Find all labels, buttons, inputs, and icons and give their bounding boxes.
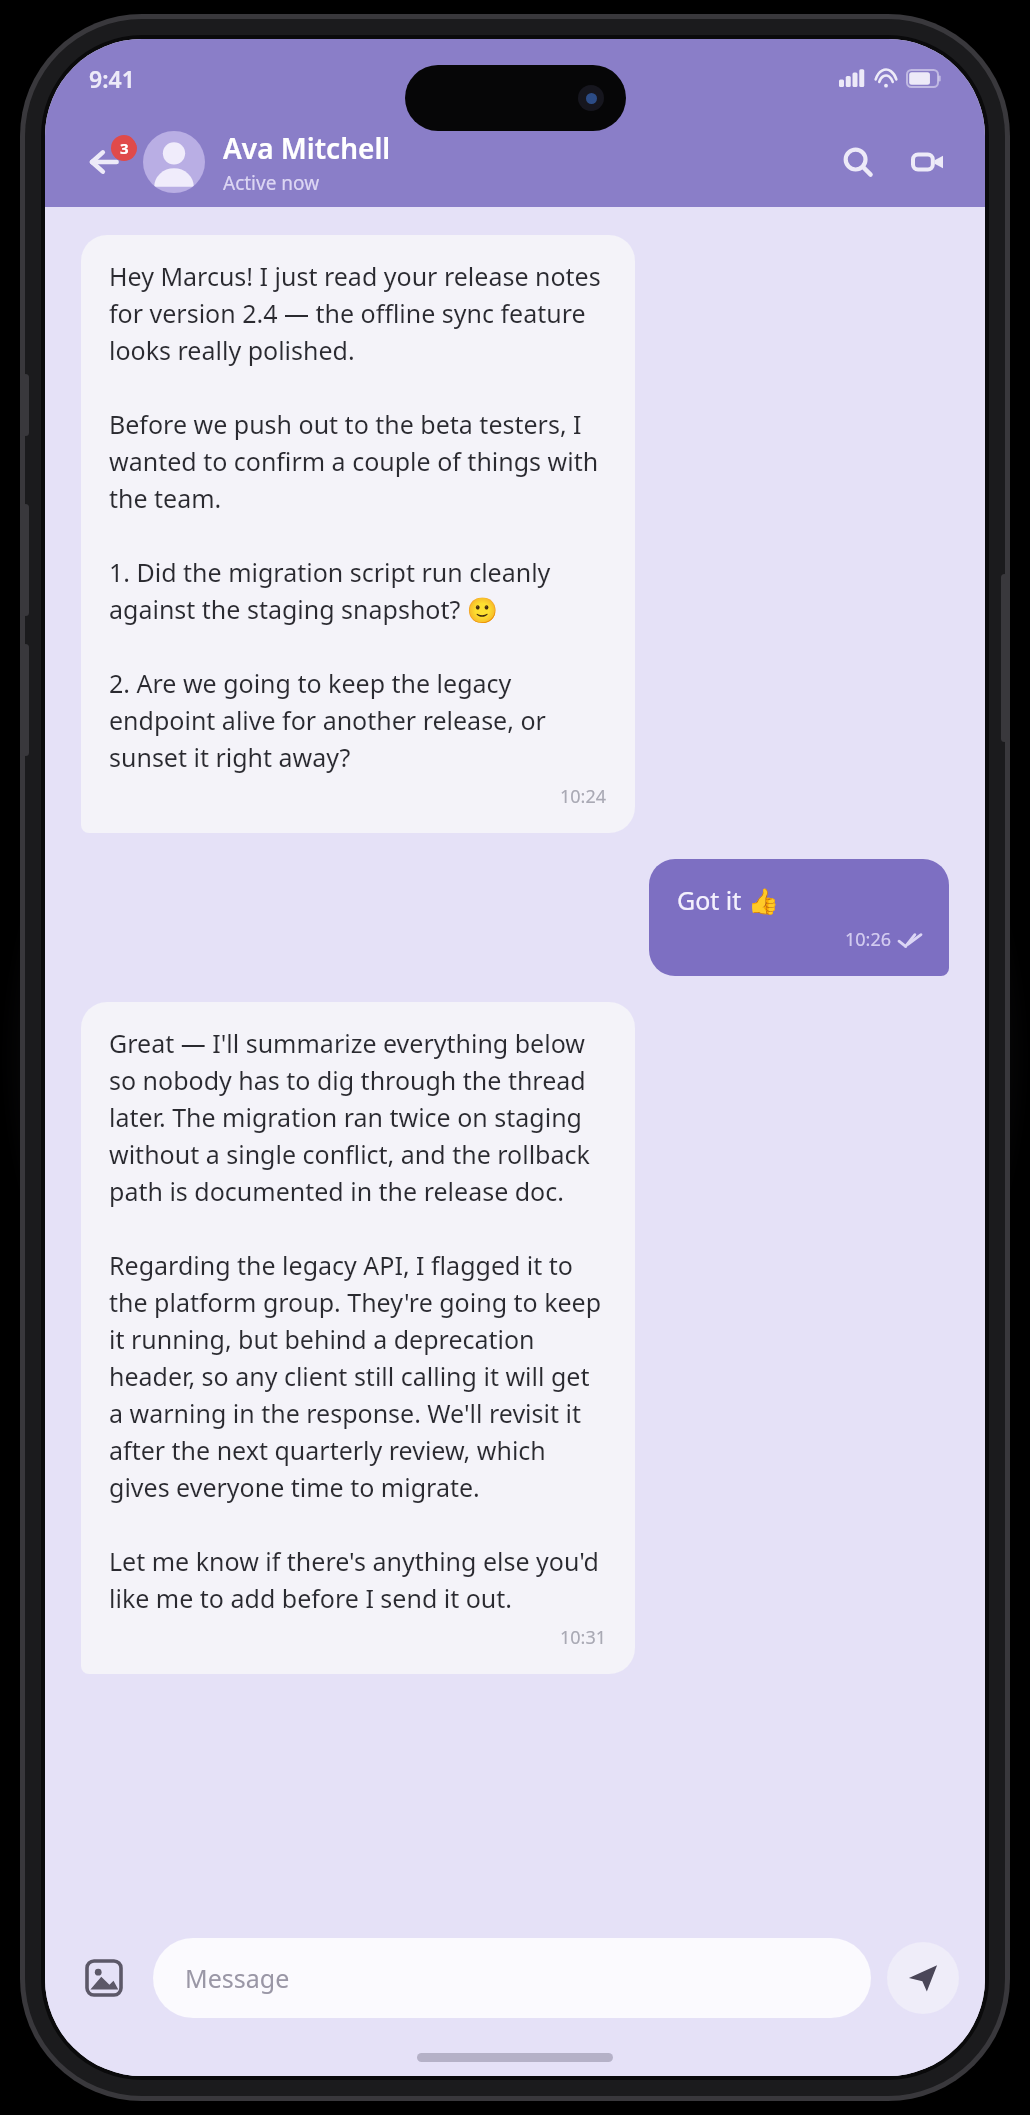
button[interactable]: Back bbox=[67, 125, 141, 199]
button[interactable]: Search bbox=[823, 127, 893, 197]
button[interactable]: Add attachment bbox=[71, 1945, 137, 2011]
staticText: 10:26 bbox=[845, 927, 892, 952]
staticText: Got it 👍 bbox=[677, 883, 779, 917]
button[interactable]: Hey Marcus! I just read your release not… bbox=[81, 235, 635, 833]
staticText: 10:24 bbox=[560, 784, 607, 809]
staticText: Active now bbox=[223, 170, 320, 196]
staticText: Ava Mitchell bbox=[223, 129, 391, 167]
staticText: Message bbox=[185, 1961, 290, 1995]
button[interactable]: Got it 👍 bbox=[649, 859, 949, 976]
staticText: Great — I'll summarize everything below … bbox=[109, 1026, 607, 1615]
button[interactable]: Great — I'll summarize everything below … bbox=[81, 1002, 635, 1674]
staticText: 10:31 bbox=[560, 1625, 607, 1650]
button[interactable]: Contact avatar bbox=[143, 131, 205, 193]
button[interactable]: More options bbox=[893, 127, 963, 197]
staticText: 9:41 bbox=[89, 63, 135, 94]
button[interactable]: Message bbox=[153, 1938, 871, 2018]
staticText: 3 bbox=[120, 138, 129, 158]
staticText: Hey Marcus! I just read your release not… bbox=[109, 259, 607, 774]
button[interactable]: Send message bbox=[887, 1942, 959, 2014]
